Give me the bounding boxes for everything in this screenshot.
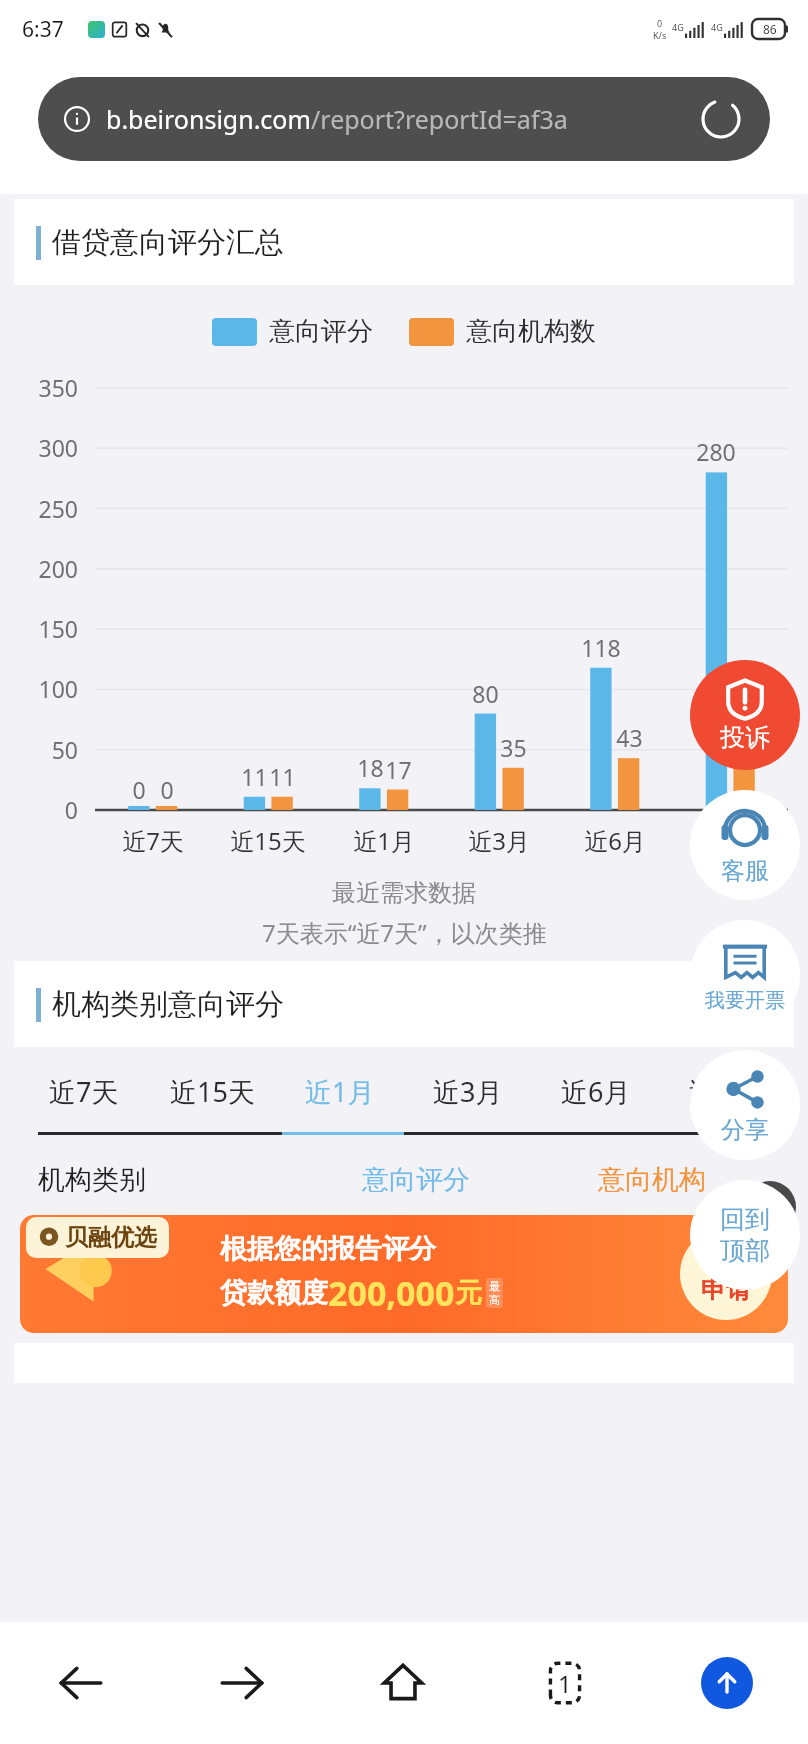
button[interactable]: 现在	[680, 1228, 772, 1320]
staticText: 投诉	[720, 722, 770, 753]
button[interactable]: 根据您的报告评分	[20, 1215, 788, 1333]
staticText: /report?reportId=af3a	[311, 102, 568, 136]
button[interactable]: Tabs	[484, 1622, 646, 1744]
staticText: 客服	[721, 856, 769, 886]
staticText: 我要开票	[705, 988, 785, 1013]
staticText: 280	[696, 436, 736, 467]
staticText: 借贷意向评分汇总	[52, 224, 284, 261]
button[interactable]: 近3月	[404, 1067, 532, 1116]
staticText: 0	[132, 774, 146, 805]
button[interactable]: Back	[0, 1622, 161, 1744]
staticText: 100	[8, 673, 78, 704]
staticText: 意向机构数	[466, 315, 596, 348]
staticText: 62	[731, 699, 758, 730]
staticText: 元	[455, 1276, 482, 1310]
staticText: 150	[8, 613, 78, 644]
staticText: 0	[8, 794, 78, 825]
button[interactable]: Close ad	[744, 1181, 796, 1233]
staticText: 50	[8, 734, 78, 765]
staticText: 回到	[720, 1204, 770, 1235]
staticText: 200	[8, 553, 78, 584]
staticText: 最近需求数据	[332, 878, 476, 908]
staticText: 17	[385, 754, 412, 785]
staticText: 机构类别意向评分	[52, 986, 284, 1023]
button[interactable]: 近15天	[148, 1067, 276, 1116]
staticText: K/s	[653, 29, 667, 41]
staticText: 86	[763, 21, 777, 37]
staticText: 近6月	[561, 1073, 631, 1110]
button[interactable]: 近6月	[532, 1067, 660, 1116]
staticText: 43	[616, 722, 643, 753]
button[interactable]: 近1年	[660, 1067, 788, 1116]
staticText: 近6月	[584, 824, 646, 857]
button[interactable]: 客服	[690, 790, 800, 900]
staticText: 0	[160, 774, 174, 805]
staticText: 18	[357, 752, 384, 783]
staticText: 7天表示“近7天”，以次类推	[262, 916, 547, 949]
button[interactable]: Forward	[161, 1622, 322, 1744]
staticText: 近3月	[468, 824, 530, 857]
staticText: 118	[581, 632, 621, 663]
staticText: 近7天	[122, 824, 184, 857]
button[interactable]: 投诉	[690, 660, 800, 770]
staticText: 1	[558, 1667, 572, 1700]
button[interactable]: Reload	[698, 96, 744, 142]
staticText: 200,000	[328, 1270, 455, 1316]
button[interactable]: 近1月	[276, 1067, 404, 1116]
staticText: 贝融优选	[65, 1223, 157, 1252]
staticText: 顶部	[720, 1235, 770, 1266]
staticText: 300	[8, 432, 78, 463]
staticText: 11	[241, 761, 268, 792]
staticText: 贷款额度	[220, 1276, 328, 1310]
staticText: 意向机构	[534, 1163, 770, 1197]
button[interactable]: 回到	[690, 1180, 800, 1290]
staticText: 近1月	[305, 1073, 375, 1110]
staticText: 现在	[701, 1243, 751, 1274]
staticText: 申请	[701, 1274, 751, 1305]
button[interactable]: 分享	[690, 1050, 800, 1160]
button[interactable]: 我要开票	[690, 920, 800, 1030]
staticText: 0	[657, 17, 663, 29]
staticText: 意向评分	[298, 1163, 534, 1197]
staticText: 分享	[721, 1115, 769, 1145]
staticText: 近1月	[353, 824, 415, 857]
staticText: 近3月	[433, 1073, 503, 1110]
staticText: 根据您的报告评分	[220, 1232, 436, 1266]
staticText: 35	[500, 732, 527, 763]
staticText: 4G	[672, 21, 684, 33]
staticText: 11	[269, 761, 296, 792]
staticText: 250	[8, 493, 78, 524]
staticText: 最	[489, 1279, 500, 1293]
staticText: 近15天	[230, 824, 306, 857]
staticText: 近7天	[49, 1073, 119, 1110]
staticText: 80	[472, 678, 499, 709]
button[interactable]: Scroll to top	[646, 1622, 808, 1744]
button[interactable]: 近7天	[20, 1067, 148, 1116]
staticText: 高	[489, 1293, 500, 1307]
staticText: 350	[8, 372, 78, 403]
staticText: 4G	[711, 21, 723, 33]
staticText: 机构类别	[38, 1163, 298, 1197]
staticText: 近1年	[689, 1073, 759, 1110]
staticText: 近1年	[699, 824, 761, 857]
staticText: b.beironsign.com	[106, 102, 311, 136]
button[interactable]: Home	[322, 1622, 484, 1744]
button[interactable]: b.beironsign.com	[38, 77, 770, 161]
staticText: 6:37	[22, 15, 64, 44]
staticText: 近15天	[170, 1073, 255, 1110]
staticText: 意向评分	[269, 315, 373, 348]
